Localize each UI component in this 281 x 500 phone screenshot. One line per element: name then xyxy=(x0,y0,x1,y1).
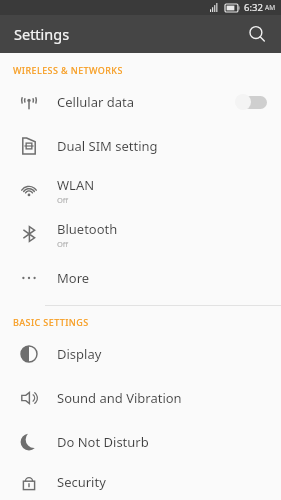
staticText: AM xyxy=(265,3,276,12)
button[interactable]: Display xyxy=(0,332,281,376)
staticText: Do Not Disturb xyxy=(57,433,149,451)
staticText: WIRELESS & NETWORKS xyxy=(13,64,123,76)
button[interactable]: Dual SIM setting xyxy=(0,124,281,168)
staticText: Dual SIM setting xyxy=(57,137,158,155)
staticText: Off xyxy=(57,239,69,249)
button[interactable]: Sound and Vibration xyxy=(0,376,281,420)
staticText: BASIC SETTINGS xyxy=(13,316,89,328)
button[interactable]: Cellular data xyxy=(0,80,281,124)
staticText: Off xyxy=(57,195,69,205)
staticText: Cellular data xyxy=(57,93,134,111)
staticText: Display xyxy=(57,345,102,363)
staticText: Bluetooth xyxy=(57,220,118,238)
staticText: Sound and Vibration xyxy=(57,389,182,407)
button[interactable]: Bluetooth xyxy=(0,212,281,256)
staticText: WLAN xyxy=(57,176,95,194)
button[interactable]: WLAN xyxy=(0,168,281,212)
button[interactable]: Security xyxy=(0,464,281,500)
staticText: 6:32 xyxy=(244,1,263,14)
button[interactable]: Cellular data toggle xyxy=(234,92,268,112)
button[interactable]: Search xyxy=(241,18,273,50)
staticText: Settings xyxy=(14,24,70,44)
button[interactable]: Do Not Disturb xyxy=(0,420,281,464)
staticText: More xyxy=(57,269,90,287)
button[interactable]: More xyxy=(0,256,281,300)
staticText: Security xyxy=(57,473,106,491)
